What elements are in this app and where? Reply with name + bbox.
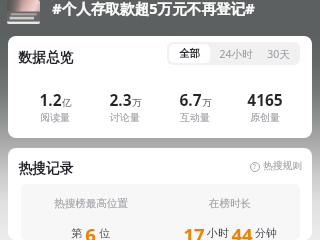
staticText: 分钟 <box>255 226 277 240</box>
button[interactable]: 全部 <box>169 44 210 63</box>
staticText: 第 <box>71 226 82 240</box>
staticText: 热搜规则 <box>263 160 302 172</box>
staticText: 在榜时长 <box>209 197 251 210</box>
staticText: 17 <box>183 222 205 240</box>
button[interactable]: Topic thumbnail <box>7 0 40 24</box>
button[interactable]: 24小时 <box>212 42 260 65</box>
staticText: 数据总览 <box>18 49 74 66</box>
staticText: 热搜记录 <box>18 160 74 177</box>
staticText: 2.3 <box>109 89 132 110</box>
staticText: 小时 <box>207 226 229 240</box>
staticText: 热搜榜最高位置 <box>54 197 128 210</box>
staticText: 万 <box>132 97 142 109</box>
staticText: 讨论量 <box>110 111 140 124</box>
staticText: 阅读量 <box>40 111 70 124</box>
staticText: 位 <box>99 226 110 240</box>
button[interactable]: 30天 <box>260 42 300 65</box>
staticText: 24小时 <box>219 47 253 61</box>
staticText: 6.7 <box>179 89 202 110</box>
staticText: 亿 <box>62 97 72 109</box>
staticText: #个人存取款超5万元不再登记# <box>52 0 255 18</box>
staticText: 全部 <box>179 47 200 60</box>
staticText: 原创量 <box>250 111 280 124</box>
staticText: 30天 <box>267 47 290 61</box>
staticText: 6 <box>85 222 96 240</box>
staticText: 万 <box>202 97 212 109</box>
button[interactable]: ? <box>249 160 302 172</box>
staticText: 4165 <box>247 89 283 110</box>
staticText: ? <box>253 162 256 171</box>
staticText: 44 <box>231 222 253 240</box>
staticText: 互动量 <box>180 111 210 124</box>
staticText: 1.2 <box>39 89 62 110</box>
